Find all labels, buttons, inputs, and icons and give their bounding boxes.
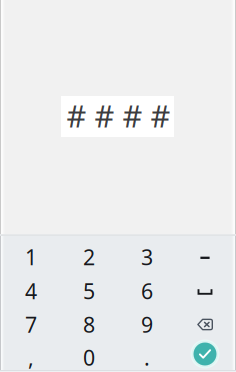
- staticText: .: [144, 343, 150, 372]
- button[interactable]: 1: [2, 240, 60, 274]
- staticText: 8: [83, 310, 95, 339]
- button[interactable]: 5: [60, 274, 118, 308]
- staticText: 6: [141, 277, 153, 305]
- staticText: 1: [25, 243, 37, 271]
- staticText: 2: [83, 243, 95, 271]
- button[interactable]: 8: [60, 308, 118, 341]
- staticText: 7: [25, 310, 37, 339]
- button[interactable]: 7: [2, 308, 60, 341]
- button[interactable]: 3: [118, 240, 176, 274]
- staticText: 4: [25, 277, 37, 305]
- button[interactable]: .: [118, 341, 176, 372]
- button[interactable]: Minus: [174, 240, 236, 274]
- button[interactable]: ,: [2, 341, 60, 372]
- staticText: 0: [83, 343, 95, 372]
- button[interactable]: Confirm: [174, 341, 236, 372]
- staticText: 3: [141, 243, 153, 271]
- staticText: # # # #: [66, 95, 170, 136]
- staticText: 5: [83, 277, 95, 305]
- button[interactable]: Delete: [174, 308, 236, 341]
- button[interactable]: 4: [2, 274, 60, 308]
- button[interactable]: 6: [118, 274, 176, 308]
- button[interactable]: 9: [118, 308, 176, 341]
- button[interactable]: 0: [60, 341, 118, 372]
- button[interactable]: 2: [60, 240, 118, 274]
- button[interactable]: Space: [174, 274, 236, 308]
- staticText: 9: [141, 310, 153, 339]
- staticText: ,: [28, 343, 34, 372]
